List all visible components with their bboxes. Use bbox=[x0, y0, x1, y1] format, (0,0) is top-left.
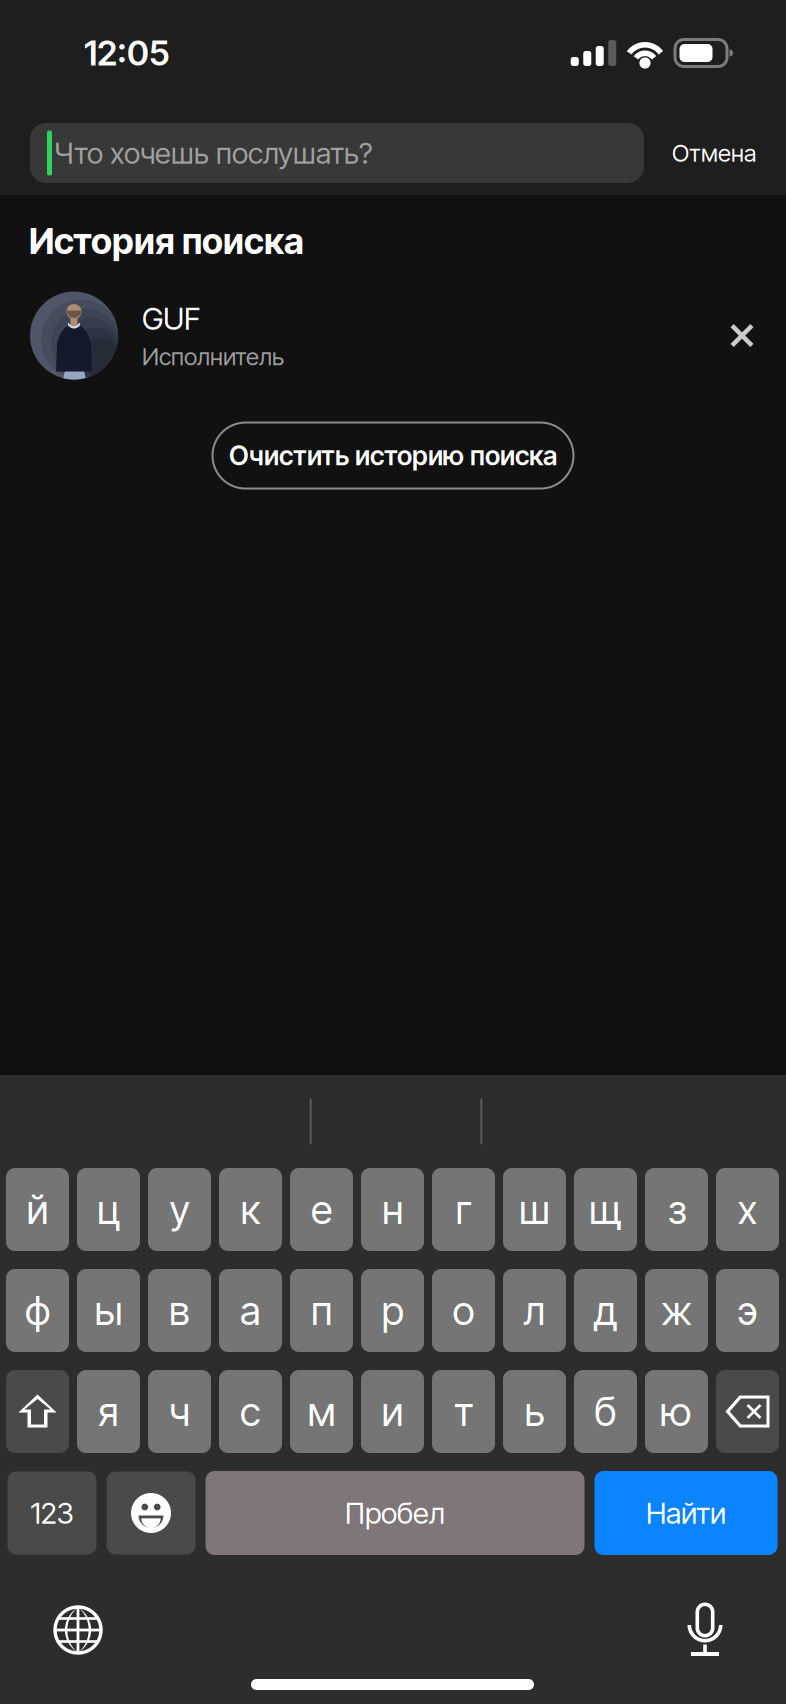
button[interactable]: ц bbox=[77, 1168, 140, 1251]
staticText: ш bbox=[519, 1185, 550, 1234]
button[interactable]: Пробел bbox=[205, 1471, 584, 1555]
staticText: р bbox=[381, 1286, 403, 1335]
button[interactable]: с bbox=[219, 1370, 282, 1453]
button[interactable]: ы bbox=[77, 1269, 140, 1352]
staticText: 12:05 bbox=[84, 32, 170, 74]
staticText: Пробел bbox=[345, 1495, 445, 1531]
button[interactable]: з bbox=[645, 1168, 708, 1251]
staticText: м bbox=[307, 1387, 335, 1436]
button[interactable]: Отмена bbox=[644, 123, 785, 183]
button[interactable]: э bbox=[716, 1269, 779, 1352]
button[interactable]: я bbox=[77, 1370, 140, 1453]
staticText: ч bbox=[169, 1387, 190, 1436]
button[interactable]: в bbox=[148, 1269, 211, 1352]
staticText: Найти bbox=[646, 1495, 726, 1531]
staticText: з bbox=[667, 1185, 685, 1234]
button[interactable]: ч bbox=[148, 1370, 211, 1453]
staticText: к bbox=[240, 1185, 260, 1234]
button[interactable]: б bbox=[574, 1370, 637, 1453]
staticText: История поиска bbox=[29, 219, 304, 263]
button[interactable]: а bbox=[219, 1269, 282, 1352]
button[interactable]: х bbox=[716, 1168, 779, 1251]
staticText: Исполнитель bbox=[142, 342, 284, 371]
staticText: э bbox=[737, 1286, 757, 1335]
button[interactable]: Удалить bbox=[710, 304, 774, 368]
staticText: Отмена bbox=[672, 138, 756, 167]
button[interactable]: ж bbox=[645, 1269, 708, 1352]
button[interactable]: 123 bbox=[7, 1471, 96, 1554]
button[interactable]: р bbox=[361, 1269, 424, 1352]
button[interactable]: м bbox=[290, 1370, 353, 1453]
button[interactable]: Emoji bbox=[106, 1471, 195, 1554]
staticText: ц bbox=[97, 1185, 120, 1234]
button[interactable]: щ bbox=[574, 1168, 637, 1251]
button[interactable]: и bbox=[361, 1370, 424, 1453]
staticText: г bbox=[455, 1185, 471, 1234]
button[interactable]: к bbox=[219, 1168, 282, 1251]
staticText: л bbox=[523, 1286, 545, 1335]
staticText: ж bbox=[661, 1286, 692, 1335]
button[interactable]: д bbox=[574, 1269, 637, 1352]
button[interactable]: н bbox=[361, 1168, 424, 1251]
staticText: п bbox=[311, 1286, 332, 1335]
button[interactable]: ф bbox=[6, 1269, 69, 1352]
button[interactable]: ь bbox=[503, 1370, 566, 1453]
staticText: ы bbox=[94, 1286, 122, 1335]
button[interactable]: Delete bbox=[716, 1370, 779, 1453]
staticText: а bbox=[240, 1286, 261, 1335]
staticText: GUF bbox=[142, 300, 201, 337]
staticText: н bbox=[382, 1185, 403, 1234]
staticText: д bbox=[594, 1286, 617, 1335]
button[interactable]: т bbox=[432, 1370, 495, 1453]
staticText: б bbox=[594, 1387, 616, 1436]
staticText: т bbox=[454, 1387, 473, 1436]
button[interactable]: Dictation bbox=[663, 1588, 747, 1672]
staticText: е bbox=[311, 1185, 332, 1234]
button[interactable]: п bbox=[290, 1269, 353, 1352]
staticText: с bbox=[240, 1387, 261, 1436]
staticText: и bbox=[381, 1387, 403, 1436]
staticText: х bbox=[737, 1185, 757, 1234]
button[interactable]: Switch keyboard bbox=[36, 1588, 120, 1672]
button[interactable]: Очистить историю поиска bbox=[212, 423, 573, 489]
staticText: й bbox=[26, 1185, 48, 1234]
button[interactable]: е bbox=[290, 1168, 353, 1251]
staticText: о bbox=[452, 1286, 474, 1335]
staticText: Очистить историю поиска bbox=[229, 439, 557, 472]
button[interactable]: л bbox=[503, 1269, 566, 1352]
button[interactable]: г bbox=[432, 1168, 495, 1251]
staticText: 123 bbox=[30, 1495, 73, 1531]
button[interactable]: Найти bbox=[594, 1471, 777, 1555]
staticText: ь bbox=[524, 1387, 544, 1436]
button[interactable]: о bbox=[432, 1269, 495, 1352]
staticText: ф bbox=[25, 1286, 50, 1335]
button[interactable]: ш bbox=[503, 1168, 566, 1251]
staticText: в bbox=[169, 1286, 190, 1335]
button[interactable]: й bbox=[6, 1168, 69, 1251]
staticText: Что хочешь послушать? bbox=[54, 135, 372, 171]
staticText: щ bbox=[589, 1185, 622, 1234]
staticText: у bbox=[169, 1185, 189, 1234]
button[interactable]: у bbox=[148, 1168, 211, 1251]
staticText: я bbox=[98, 1387, 119, 1436]
staticText: ю bbox=[661, 1387, 692, 1436]
button[interactable]: GUF bbox=[0, 290, 786, 382]
button[interactable]: Shift bbox=[6, 1370, 69, 1453]
button[interactable]: ю bbox=[645, 1370, 708, 1453]
